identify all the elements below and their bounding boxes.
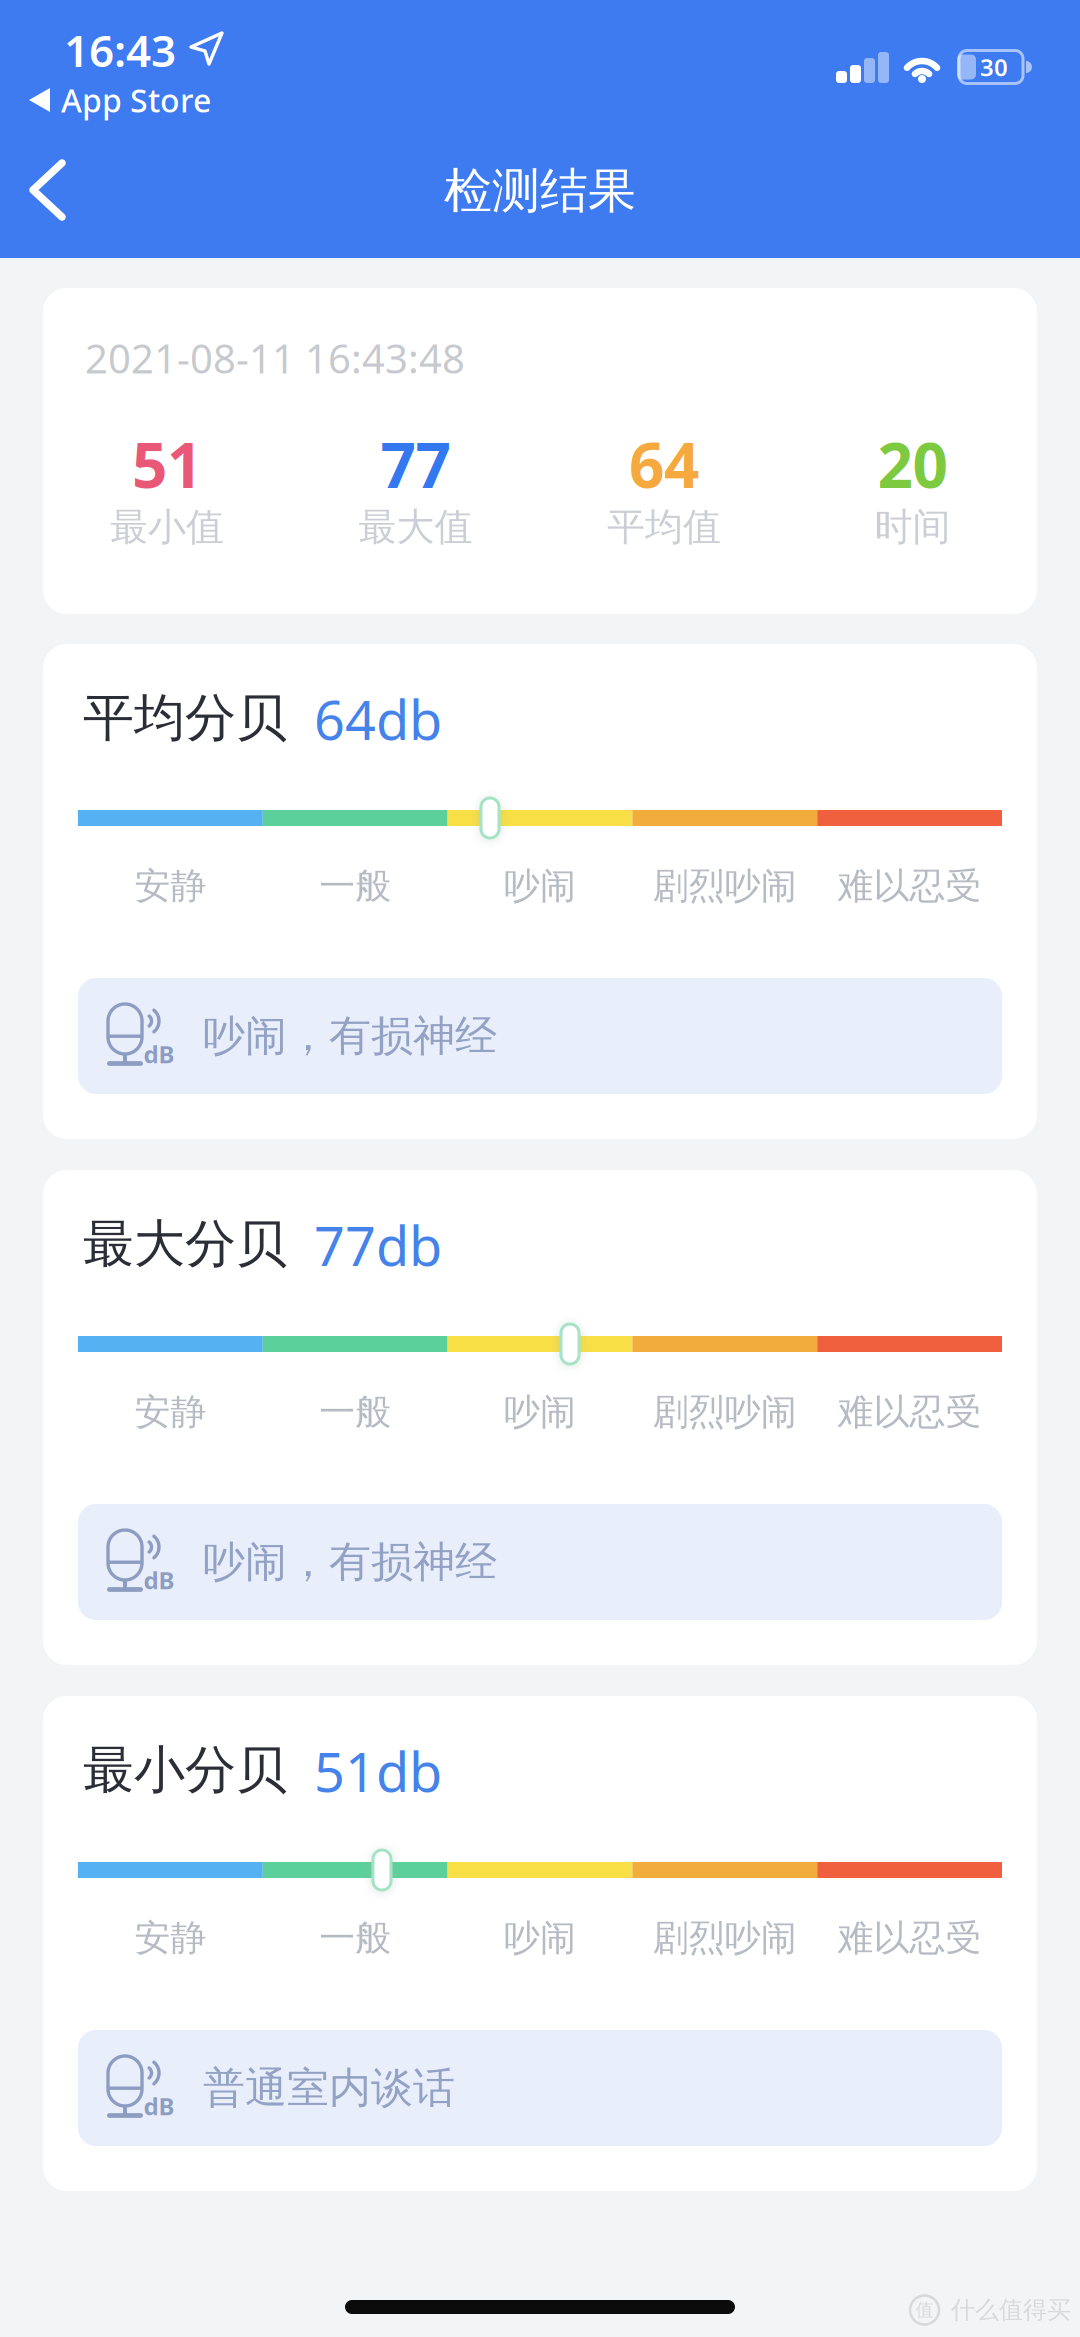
staticText: 难以忍受 xyxy=(838,863,982,909)
staticText: 77 xyxy=(380,422,450,506)
staticText: 最小值 xyxy=(110,503,224,551)
staticText: 2021-08-11 16:43:48 xyxy=(85,331,465,385)
staticText: 吵闹 xyxy=(504,1389,576,1435)
staticText: 吵闹，有损神经 xyxy=(203,1009,497,1062)
staticText: 普通室内谈话 xyxy=(203,2061,455,2114)
staticText: 安静 xyxy=(134,1389,206,1435)
staticText: 51db xyxy=(314,1734,442,1808)
staticText: 一般 xyxy=(319,1389,391,1435)
staticText: 剧烈吵闹 xyxy=(653,863,797,909)
staticText: 一般 xyxy=(319,1915,391,1961)
staticText: 吵闹 xyxy=(504,863,576,909)
staticText: 最大分贝 xyxy=(83,1212,287,1276)
staticText: 一般 xyxy=(319,863,391,909)
staticText: 难以忍受 xyxy=(838,1915,982,1961)
staticText: App Store xyxy=(61,78,211,122)
staticText: dB xyxy=(143,2090,174,2122)
staticText: 安静 xyxy=(134,1915,206,1961)
button[interactable] xyxy=(0,150,96,230)
staticText: 值 xyxy=(915,2299,933,2321)
staticText: 51 xyxy=(132,422,202,506)
staticText: 64db xyxy=(314,682,442,756)
staticText: 剧烈吵闹 xyxy=(653,1389,797,1435)
staticText: 最小分贝 xyxy=(83,1738,287,1802)
staticText: 77db xyxy=(314,1208,442,1282)
staticText: 难以忍受 xyxy=(838,1389,982,1435)
staticText: 平均分贝 xyxy=(83,686,287,750)
staticText: 30 xyxy=(980,51,1008,83)
staticText: 20 xyxy=(877,422,947,506)
staticText: 64 xyxy=(629,422,699,506)
button[interactable]: App Store xyxy=(25,85,285,119)
staticText: dB xyxy=(143,1038,174,1070)
staticText: dB xyxy=(143,1564,174,1596)
staticText: 吵闹，有损神经 xyxy=(203,1535,497,1588)
staticText: 吵闹 xyxy=(504,1915,576,1961)
staticText: 安静 xyxy=(134,863,206,909)
staticText: 时间 xyxy=(874,503,950,551)
staticText: 平均值 xyxy=(607,503,721,551)
staticText: 检测结果 xyxy=(444,161,636,221)
staticText: 什么值得买 xyxy=(951,2295,1071,2325)
staticText: 最大值 xyxy=(358,503,472,551)
staticText: 16:43 xyxy=(64,20,176,80)
staticText: 剧烈吵闹 xyxy=(653,1915,797,1961)
